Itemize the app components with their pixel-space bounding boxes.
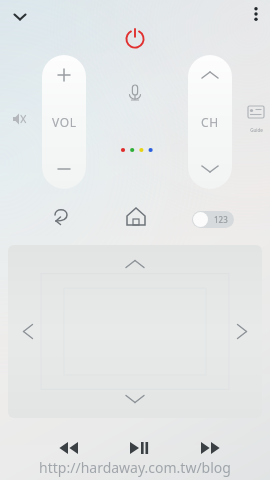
button[interactable]: Number pad toggle [192, 211, 234, 228]
button[interactable]: Voice search [122, 81, 148, 107]
button[interactable]: Volume [42, 55, 86, 189]
button[interactable]: Home [120, 203, 152, 235]
button[interactable]: Mute [6, 106, 32, 132]
button[interactable]: Colour buttons [118, 146, 152, 154]
staticText: 123 [214, 214, 228, 225]
button[interactable]: Fast forward [192, 436, 226, 460]
staticText: VOL [52, 114, 77, 130]
button[interactable]: Play or pause [118, 436, 152, 460]
button[interactable]: Rewind [52, 436, 86, 460]
button[interactable]: Channel [188, 55, 232, 189]
staticText: CH [201, 114, 219, 130]
button[interactable]: Guide [243, 103, 269, 133]
staticText: Guide [250, 127, 263, 133]
staticText: http://hardaway.com.tw/blog [39, 458, 231, 477]
button[interactable]: More options [244, 2, 268, 26]
button[interactable]: Touchpad [8, 245, 262, 418]
button[interactable]: Back [48, 203, 80, 235]
button[interactable]: Collapse [6, 3, 34, 31]
button[interactable]: Power [120, 23, 150, 53]
